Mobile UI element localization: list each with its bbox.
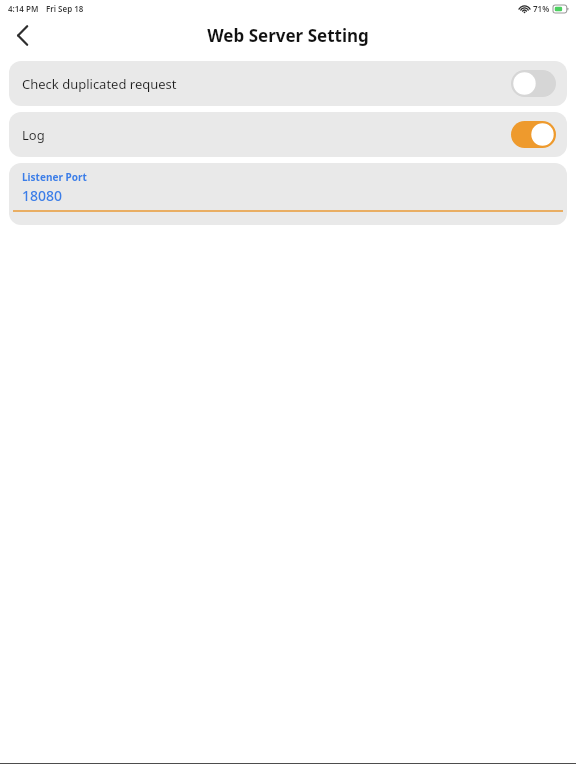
staticText: Fri Sep 18 <box>46 3 84 14</box>
button[interactable]: Off <box>511 70 556 97</box>
button[interactable]: Log <box>9 112 567 157</box>
button[interactable]: On <box>511 121 556 148</box>
staticText: Web Server Setting <box>207 24 369 47</box>
button[interactable]: Back <box>0 16 44 55</box>
staticText: Log <box>22 126 45 144</box>
button[interactable]: Check duplicated request <box>9 61 567 106</box>
button[interactable]: Listener Port <box>9 163 567 225</box>
staticText: Listener Port <box>22 170 87 184</box>
staticText: 4:14 PM <box>8 3 39 14</box>
staticText: Check duplicated request <box>22 75 177 93</box>
staticText: 18080 <box>22 186 63 205</box>
staticText: 71% <box>533 3 550 14</box>
